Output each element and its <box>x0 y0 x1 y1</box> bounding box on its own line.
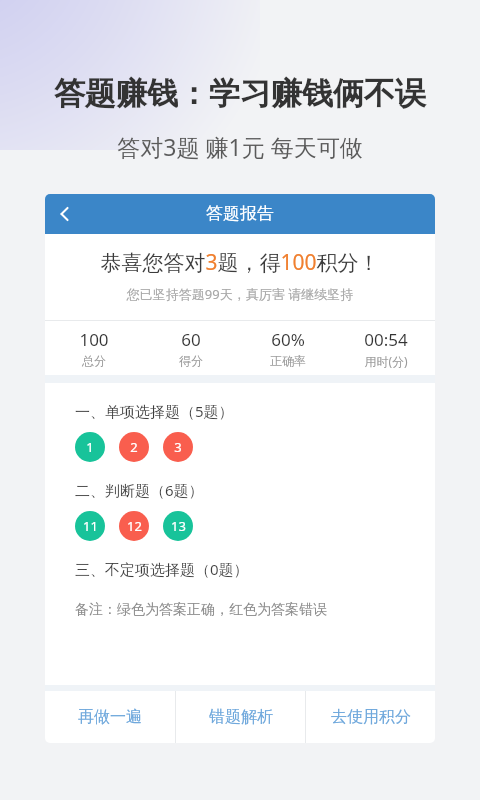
staticText: 答对3题 赚1元 每天可做 <box>0 131 480 162</box>
button[interactable]: 1 <box>75 432 105 462</box>
staticText: 您已坚持答题99天，真厉害 请继续坚持 <box>45 285 435 303</box>
staticText: 13 <box>171 517 186 535</box>
staticText: 3 <box>174 438 182 456</box>
staticText: 恭喜您答对3题，得100积分！ <box>45 248 435 277</box>
staticText: 1 <box>86 438 94 456</box>
staticText: 得分 <box>179 353 203 368</box>
staticText: 答题报告 <box>45 203 435 224</box>
staticText: 三、不定项选择题（0题） <box>75 559 249 579</box>
staticText: 二、判断题（6题） <box>75 480 204 500</box>
button[interactable]: Back <box>45 194 85 234</box>
staticText: 用时(分) <box>364 353 408 369</box>
staticText: 备注：绿色为答案正确，红色为答案错误 <box>75 601 327 619</box>
staticText: 去使用积分 <box>331 707 411 727</box>
staticText: 答题赚钱：学习赚钱俩不误 <box>0 74 480 113</box>
button[interactable]: 12 <box>119 511 149 541</box>
staticText: 2 <box>130 438 138 456</box>
staticText: 正确率 <box>270 353 306 368</box>
staticText: 11 <box>83 517 98 535</box>
staticText: 总分 <box>82 353 106 368</box>
button[interactable]: 错题解析 <box>176 691 305 743</box>
button[interactable]: 11 <box>75 511 105 541</box>
staticText: 错题解析 <box>209 707 273 727</box>
button[interactable]: 3 <box>163 432 193 462</box>
button[interactable]: 2 <box>119 432 149 462</box>
staticText: 12 <box>127 517 142 535</box>
staticText: 60 <box>181 328 201 351</box>
button[interactable]: 再做一遍 <box>45 691 175 743</box>
staticText: 00:54 <box>364 328 408 351</box>
staticText: 100 <box>79 328 109 351</box>
button[interactable]: 去使用积分 <box>306 691 435 743</box>
staticText: 60% <box>271 328 305 351</box>
staticText: 再做一遍 <box>78 707 142 727</box>
button[interactable]: 13 <box>163 511 193 541</box>
staticText: 一、单项选择题（5题） <box>75 401 234 421</box>
